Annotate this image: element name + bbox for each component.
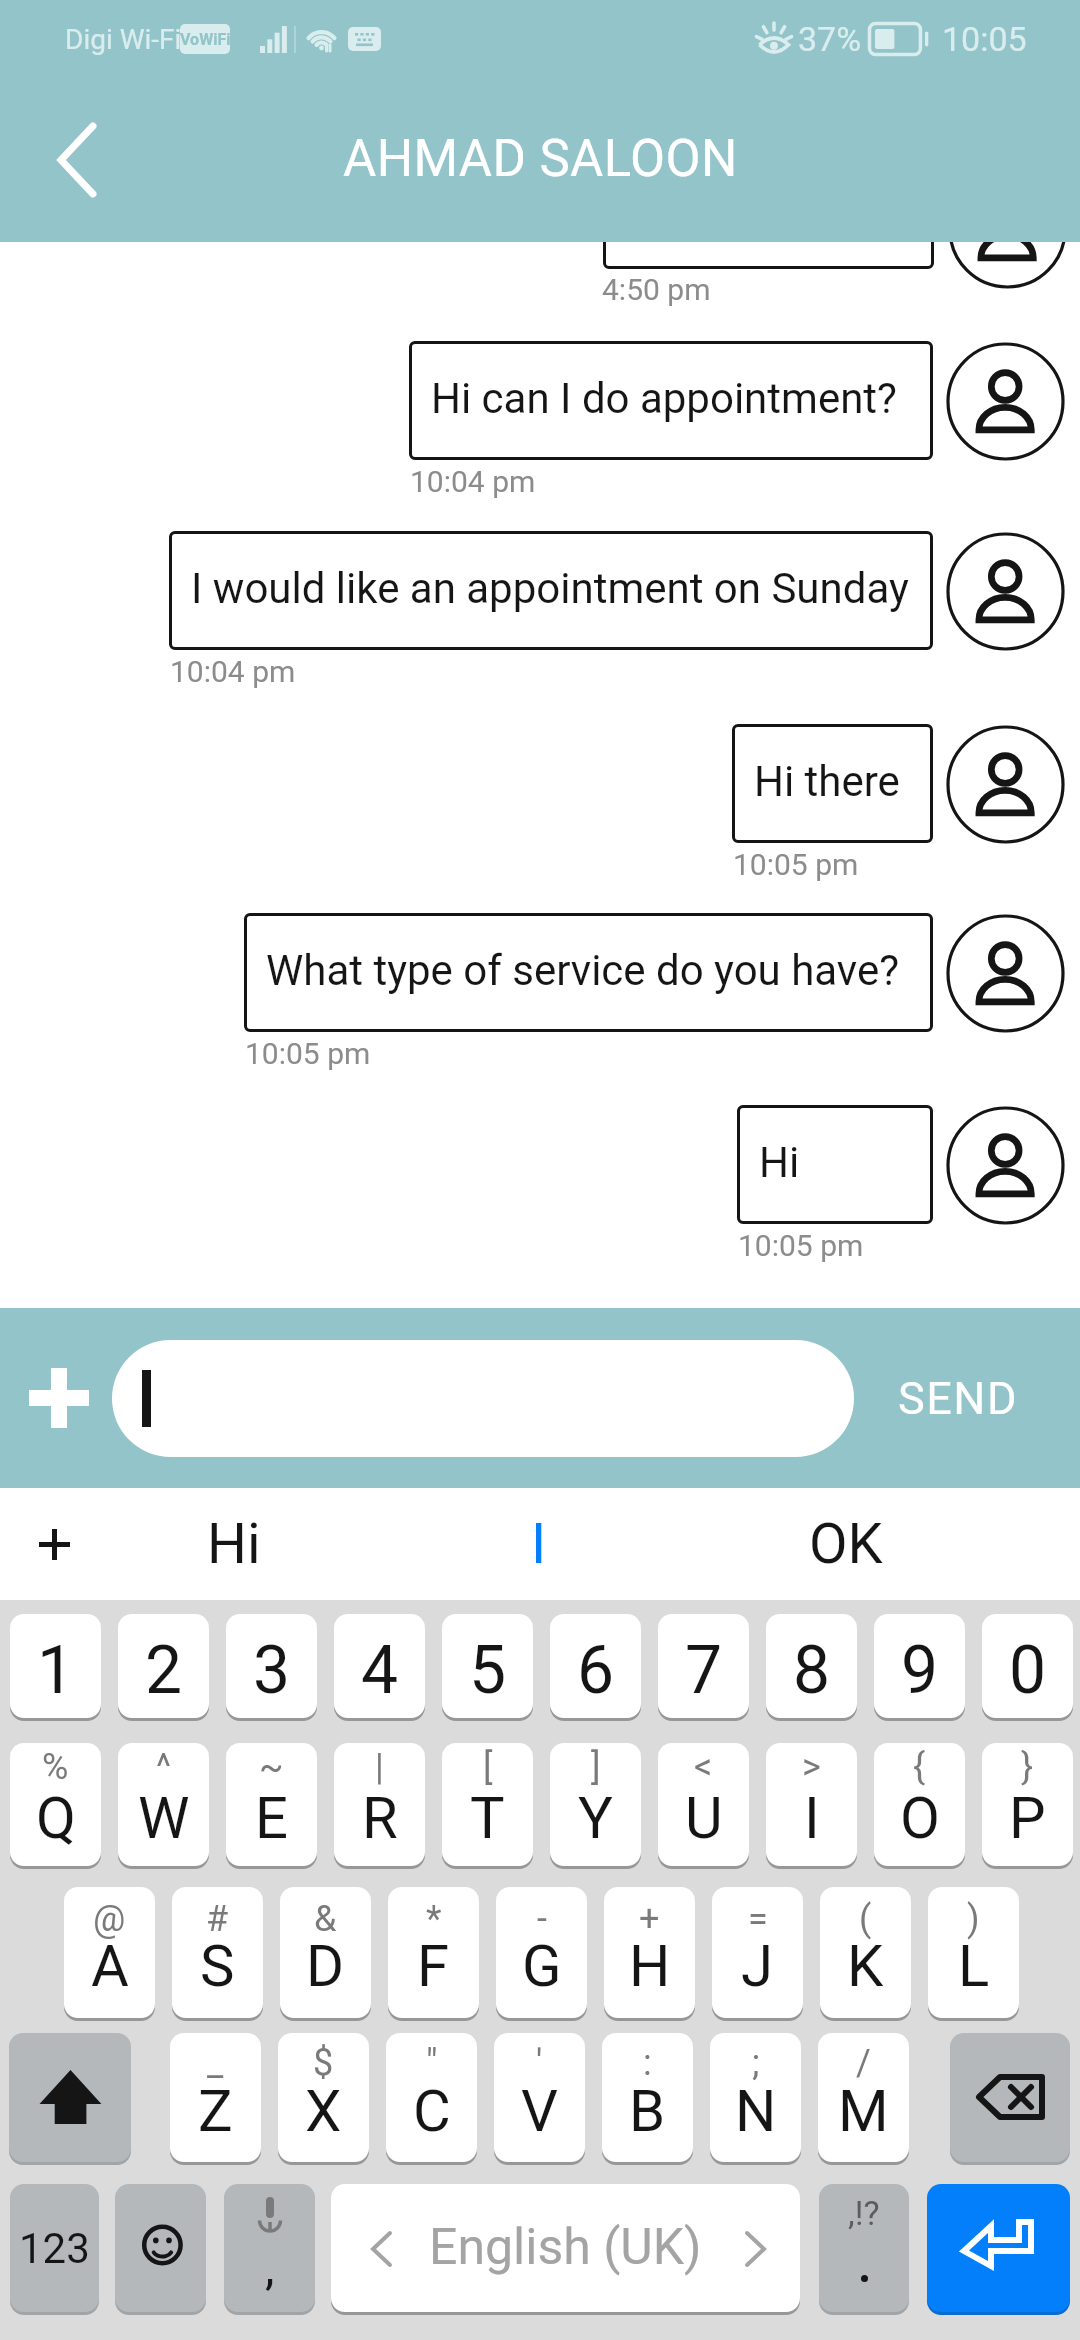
button[interactable]: * xyxy=(388,1887,479,2018)
staticText: ' xyxy=(536,2042,543,2084)
button[interactable]: 2 xyxy=(118,1614,209,1718)
button[interactable]: 4 xyxy=(334,1614,425,1718)
staticText: VoWiFi xyxy=(180,30,230,49)
staticText: I would like an appointment on Sunday xyxy=(191,564,909,613)
button[interactable]: Add attachment xyxy=(14,1353,104,1443)
button[interactable]: Period and punctuation xyxy=(819,2184,909,2312)
button[interactable]: # xyxy=(172,1887,263,2018)
staticText: ~ xyxy=(259,1746,284,1788)
button[interactable]: = xyxy=(712,1887,803,2018)
button[interactable]: English (UK) xyxy=(331,2184,800,2312)
button[interactable]: : xyxy=(602,2033,693,2162)
button[interactable]: OK xyxy=(746,1488,946,1600)
staticText: 4 xyxy=(361,1632,399,1709)
staticText: Q xyxy=(36,1784,76,1852)
staticText: Y xyxy=(578,1784,613,1852)
staticText: X xyxy=(305,2077,342,2145)
staticText: & xyxy=(314,1898,337,1940)
button[interactable]: Voice input xyxy=(224,2184,315,2312)
button[interactable]: } xyxy=(982,1743,1073,1866)
staticText: , xyxy=(265,2239,275,2295)
staticText: P xyxy=(1009,1784,1046,1852)
staticText: ] xyxy=(591,1746,601,1788)
button[interactable]: I xyxy=(439,1488,639,1600)
button[interactable]: Back xyxy=(22,105,132,215)
button[interactable]: | xyxy=(334,1743,425,1866)
button[interactable]: Hi there xyxy=(732,724,933,843)
staticText: 10:05 pm xyxy=(245,1036,371,1071)
button[interactable]: Enter xyxy=(927,2184,1070,2312)
button[interactable]: ] xyxy=(550,1743,641,1866)
staticText: ) xyxy=(967,1898,980,1940)
staticText: 10:05 pm xyxy=(733,847,859,882)
button[interactable]: ^ xyxy=(118,1743,209,1866)
button[interactable]: Hi can I do appointment? xyxy=(409,341,933,460)
button[interactable]: More suggestions xyxy=(0,1488,108,1600)
button[interactable]: 1 xyxy=(10,1614,101,1718)
staticText: Hi can I do appointment? xyxy=(431,374,897,423)
button[interactable]: ; xyxy=(710,2033,801,2162)
button[interactable]: Hi xyxy=(737,1105,933,1224)
staticText: 1 xyxy=(37,1632,75,1709)
button[interactable]: Backspace xyxy=(950,2033,1070,2162)
button[interactable]: ( xyxy=(820,1887,911,2018)
staticText: B xyxy=(629,2077,666,2145)
staticText: + xyxy=(639,1898,660,1940)
button[interactable]: - xyxy=(496,1887,587,2018)
button[interactable]: & xyxy=(280,1887,371,2018)
staticText: A xyxy=(91,1932,129,2000)
button[interactable]: $ xyxy=(278,2033,369,2162)
button[interactable]: 5 xyxy=(442,1614,533,1718)
staticText: < xyxy=(694,1746,713,1788)
button[interactable]: Hi xyxy=(134,1488,334,1600)
staticText: 0 xyxy=(1009,1632,1047,1709)
staticText: F xyxy=(417,1932,450,2000)
button[interactable]: I would like an appointment on Sunday xyxy=(169,531,933,650)
staticText: @ xyxy=(93,1898,126,1940)
button[interactable]: < xyxy=(658,1743,749,1866)
button[interactable]: _ xyxy=(170,2033,261,2162)
staticText: - xyxy=(537,1898,547,1940)
button[interactable] xyxy=(112,1340,854,1457)
button[interactable]: 9 xyxy=(874,1614,965,1718)
staticText: 3 xyxy=(253,1632,291,1709)
staticText: 37% xyxy=(798,19,862,59)
button[interactable]: ) xyxy=(928,1887,1019,2018)
staticText: " xyxy=(426,2042,438,2084)
staticText: What type of service do you have? xyxy=(266,946,900,995)
button[interactable]: " xyxy=(386,2033,477,2162)
staticText: ^ xyxy=(156,1746,172,1788)
staticText: } xyxy=(1021,1746,1034,1788)
button[interactable]: 7 xyxy=(658,1614,749,1718)
button[interactable]: [ xyxy=(442,1743,533,1866)
staticText: # xyxy=(206,1898,229,1940)
button[interactable]: 6 xyxy=(550,1614,641,1718)
button[interactable]: { xyxy=(874,1743,965,1866)
button[interactable]: Emoji xyxy=(115,2184,206,2312)
button[interactable]: ~ xyxy=(226,1743,317,1866)
button[interactable]: % xyxy=(10,1743,101,1866)
staticText: Hi xyxy=(759,1138,800,1187)
button[interactable]: > xyxy=(766,1743,857,1866)
staticText: R xyxy=(362,1784,398,1852)
button[interactable]: Shift xyxy=(9,2033,131,2162)
staticText: D xyxy=(306,1932,345,2000)
button[interactable]: + xyxy=(604,1887,695,2018)
button[interactable]: 0 xyxy=(982,1614,1073,1718)
button[interactable]: 123 xyxy=(10,2184,99,2312)
button[interactable]: @ xyxy=(64,1887,155,2018)
staticText: E xyxy=(255,1784,288,1852)
button[interactable]: ' xyxy=(494,2033,585,2162)
staticText: 2 xyxy=(145,1632,183,1709)
staticText: _ xyxy=(207,2042,224,2084)
button[interactable]: 3 xyxy=(226,1614,317,1718)
staticText: G xyxy=(522,1932,562,2000)
staticText: U xyxy=(685,1784,723,1852)
staticText: = xyxy=(748,1898,768,1940)
button[interactable]: SEND xyxy=(870,1308,1050,1488)
button[interactable]: 8 xyxy=(766,1614,857,1718)
button[interactable]: What type of service do you have? xyxy=(244,913,933,1032)
button[interactable]: / xyxy=(818,2033,909,2162)
staticText: N xyxy=(735,2077,777,2145)
staticText: * xyxy=(426,1898,442,1940)
